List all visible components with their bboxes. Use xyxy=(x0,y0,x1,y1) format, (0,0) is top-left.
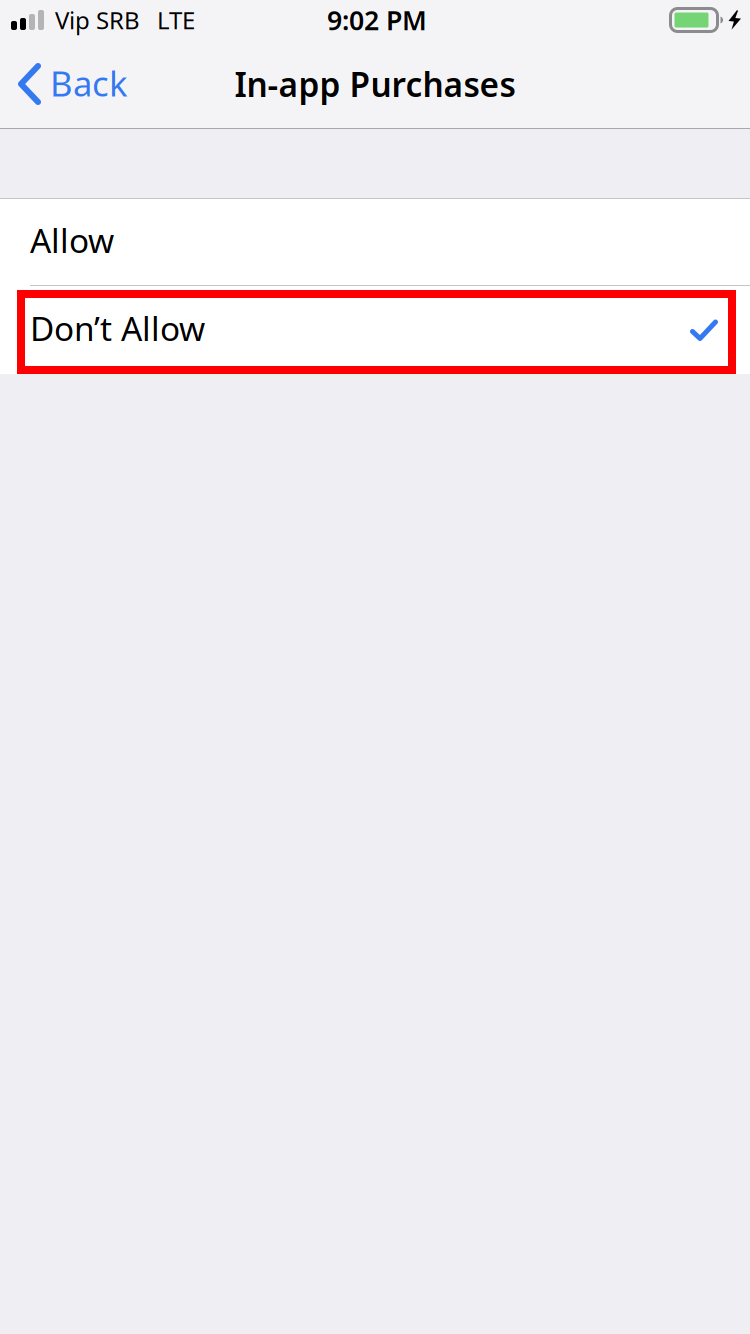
staticText: LTE xyxy=(157,4,195,36)
staticText: In-app Purchases xyxy=(234,62,515,106)
button[interactable]: Back xyxy=(0,40,142,128)
button[interactable]: Don’t Allow xyxy=(0,286,750,374)
button[interactable]: Allow xyxy=(0,199,750,285)
staticText: Don’t Allow xyxy=(30,306,205,350)
staticText: 9:02 PM xyxy=(327,2,427,38)
staticText: Vip SRB xyxy=(55,4,140,36)
staticText: Back xyxy=(50,60,128,106)
staticText: Allow xyxy=(30,218,114,262)
